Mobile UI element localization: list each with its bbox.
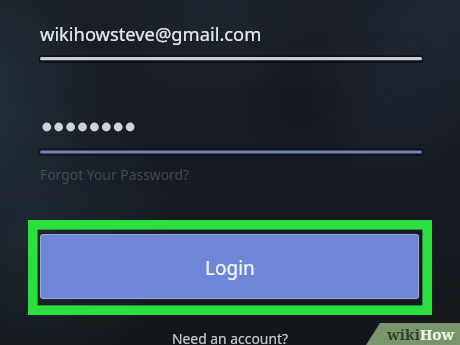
staticText: Need an account? bbox=[168, 329, 292, 345]
button[interactable]: wikihowsteve@gmail.com bbox=[34, 14, 428, 66]
button[interactable]: Forgot Your Password? bbox=[34, 162, 196, 186]
staticText: wikihowsteve@gmail.com bbox=[40, 21, 262, 46]
button[interactable]: Login bbox=[41, 235, 418, 298]
staticText: Forgot Your Password? bbox=[40, 165, 190, 184]
button[interactable]: Password bbox=[34, 112, 428, 160]
staticText: Login bbox=[205, 255, 255, 281]
staticText: wiki bbox=[387, 324, 420, 344]
staticText: How bbox=[420, 324, 455, 344]
button[interactable]: Need an account? bbox=[168, 326, 292, 345]
